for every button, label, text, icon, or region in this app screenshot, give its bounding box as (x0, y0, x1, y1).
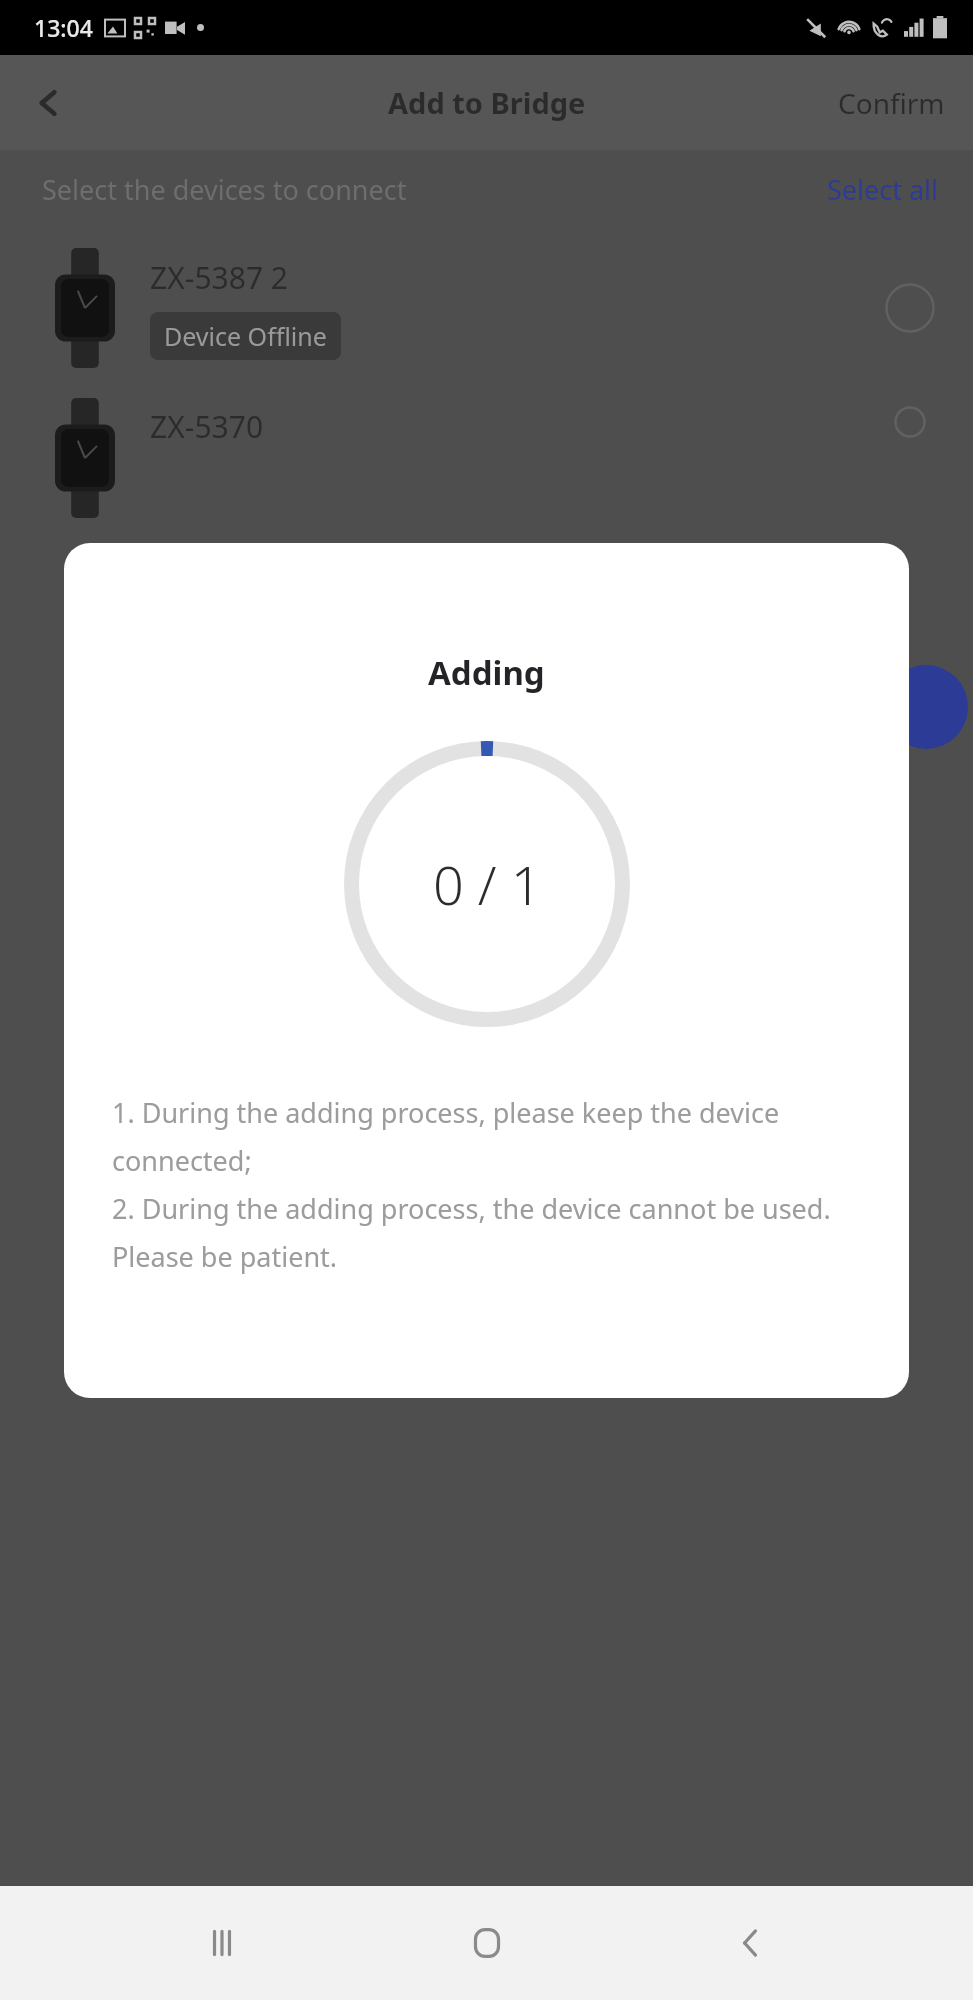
staticText: 1. During the adding process, please kee… (112, 1094, 861, 1275)
button[interactable]: Recent apps (179, 1900, 265, 1986)
button[interactable]: Home (444, 1900, 530, 1986)
staticText: Select the devices to connect (42, 171, 407, 208)
button[interactable]: Back (20, 74, 78, 132)
staticText: ZX-5370 (150, 406, 264, 447)
staticText: Confirm (838, 84, 945, 122)
button[interactable]: ZX-5370 (0, 388, 973, 538)
button[interactable]: ZX-5387 2 (0, 228, 973, 388)
button[interactable]: Select all (821, 165, 945, 214)
button[interactable]: Add device (884, 665, 968, 749)
staticText: Adding (428, 650, 545, 695)
staticText: 13:04 (34, 12, 93, 43)
staticText: Device Offline (164, 319, 327, 353)
staticText: Select all (827, 171, 939, 208)
button[interactable]: Back (708, 1900, 794, 1986)
staticText: 0 / 1 (433, 847, 542, 921)
button[interactable]: Confirm (830, 76, 953, 130)
staticText: Add to Bridge (388, 83, 586, 122)
staticText: ZX-5387 2 (150, 257, 288, 298)
